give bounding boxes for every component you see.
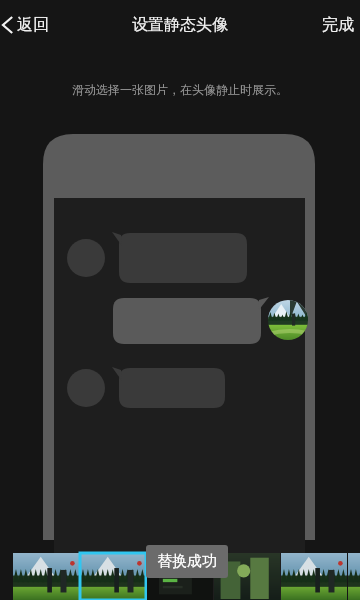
staticText: 设置静态头像 (132, 15, 228, 35)
staticText: 返回 (17, 15, 49, 35)
staticText: 替换成功 (157, 552, 217, 571)
staticText: 滑动选择一张图片，在头像静止时展示。 (0, 82, 360, 97)
button[interactable]: 完成 (316, 0, 360, 50)
button[interactable]: 返回 (0, 0, 59, 50)
staticText: 完成 (322, 15, 354, 35)
